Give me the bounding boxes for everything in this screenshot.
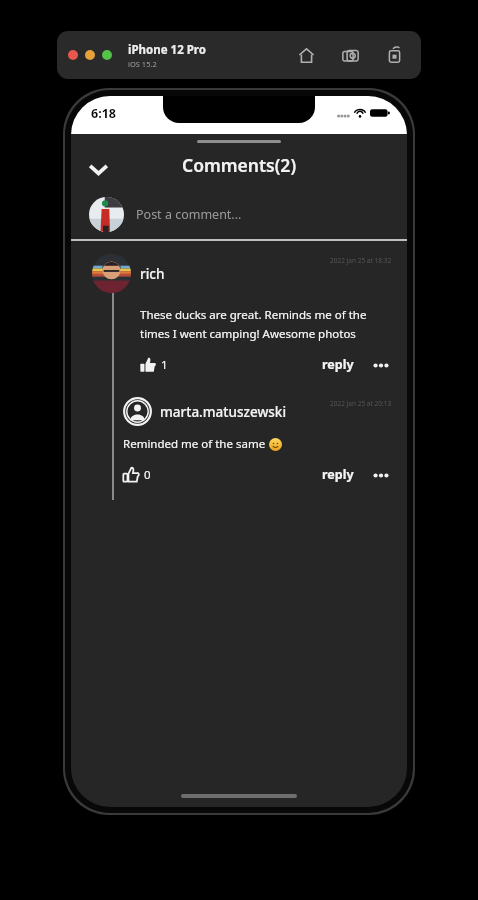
staticText: 2022 Jan 25 at 20:13 xyxy=(330,399,392,408)
other: Like xyxy=(140,357,156,373)
button[interactable]: Like xyxy=(140,355,168,375)
button[interactable]: Screenshot xyxy=(339,44,361,66)
button[interactable]: Home xyxy=(295,44,317,66)
staticText: These ducks are great. Reminds me of the xyxy=(140,307,367,323)
staticText: Reminded me of the same xyxy=(123,436,269,452)
button[interactable]: More options xyxy=(370,467,392,483)
staticText: 6:18 xyxy=(91,105,116,122)
staticText: Post a comment... xyxy=(136,206,242,223)
staticText: 0 xyxy=(144,467,151,483)
staticText: reply xyxy=(322,466,354,483)
button[interactable]: Rotate xyxy=(383,44,405,66)
staticText: iOS 15.2 xyxy=(128,59,157,69)
button[interactable]: More options xyxy=(370,357,392,373)
button[interactable]: Like xyxy=(123,465,151,485)
staticText: 1 xyxy=(161,357,168,373)
staticText: reply xyxy=(322,356,354,373)
staticText: Comments(2) xyxy=(182,153,297,177)
button[interactable]: Post a comment... xyxy=(71,192,407,236)
staticText: rich xyxy=(140,265,165,283)
other: Like xyxy=(123,467,139,483)
staticText: marta.matuszewski xyxy=(160,403,287,421)
staticText: 2022 Jan 25 at 18:32 xyxy=(330,256,392,265)
button[interactable]: Close comments xyxy=(81,153,115,185)
staticText: iPhone 12 Pro xyxy=(128,42,206,58)
button[interactable]: reply xyxy=(320,354,356,375)
button[interactable]: reply xyxy=(320,464,356,485)
staticText: times I went camping! Awesome photos xyxy=(140,326,356,342)
